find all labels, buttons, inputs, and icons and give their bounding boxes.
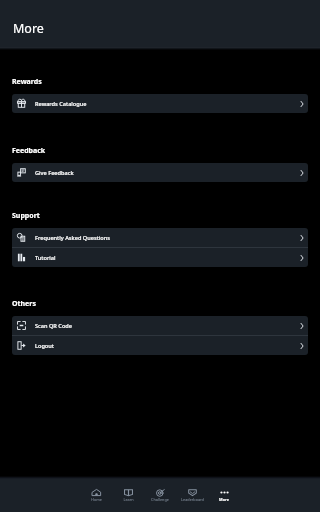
button[interactable]: More: [208, 478, 240, 512]
button[interactable]: Leaderboard: [176, 478, 208, 512]
staticText: Others: [12, 299, 36, 309]
button[interactable]: Logout: [12, 336, 308, 355]
staticText: Rewards Catalogue: [35, 100, 87, 108]
staticText: Feedback: [12, 146, 46, 156]
staticText: Frequently Asked Questions: [35, 234, 110, 242]
staticText: More: [13, 20, 44, 37]
staticText: Challenge: [151, 497, 169, 502]
button[interactable]: Learn: [112, 478, 144, 512]
staticText: Learn: [123, 497, 134, 502]
button[interactable]: Scan QR Code: [12, 316, 308, 335]
staticText: More: [219, 497, 229, 502]
staticText: Leaderboard: [181, 497, 204, 502]
staticText: Support: [12, 211, 40, 221]
button[interactable]: Challenge: [144, 478, 176, 512]
button[interactable]: Rewards Catalogue: [12, 94, 308, 113]
button[interactable]: Give Feedback: [12, 163, 308, 182]
staticText: Rewards: [12, 77, 42, 87]
button[interactable]: Tutorial: [12, 248, 308, 267]
staticText: Tutorial: [35, 254, 56, 262]
staticText: Home: [91, 497, 102, 502]
button[interactable]: Frequently Asked Questions: [12, 228, 308, 247]
button[interactable]: Home: [80, 478, 112, 512]
staticText: Scan QR Code: [35, 322, 73, 330]
staticText: Give Feedback: [35, 169, 74, 177]
staticText: Logout: [35, 342, 54, 350]
